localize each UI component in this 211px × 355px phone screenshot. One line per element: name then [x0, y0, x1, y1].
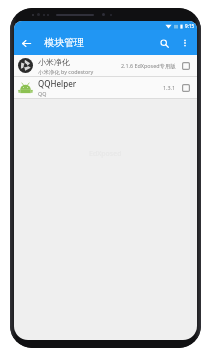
staticText: 1.3.1: [163, 84, 176, 91]
button[interactable]: Back: [14, 31, 38, 55]
button[interactable]: More options: [175, 33, 195, 53]
button[interactable]: Enable 小米净化: [179, 59, 193, 73]
staticText: QQ: [38, 90, 47, 97]
staticText: 小米净化: [38, 57, 70, 67]
staticText: 模块管理: [44, 36, 84, 49]
staticText: 小米净化 by codestory: [38, 68, 94, 75]
button[interactable]: Search: [153, 32, 175, 54]
button[interactable]: 小米净化: [14, 55, 197, 76]
button[interactable]: Enable QQHelper: [179, 81, 193, 95]
staticText: 9:15: [185, 23, 195, 29]
staticText: QQHelper: [38, 78, 77, 89]
staticText: 2.1.6 EdXposed专用版: [121, 62, 176, 69]
button[interactable]: QQHelper: [14, 77, 197, 98]
